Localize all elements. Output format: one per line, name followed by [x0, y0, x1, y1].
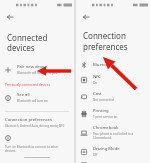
- staticText: 1 print service on: [93, 115, 118, 119]
- button[interactable]: Printing: [76, 105, 150, 122]
- button[interactable]: Pair new device: [0, 61, 74, 78]
- button[interactable]: Driving Mode: [76, 143, 150, 160]
- button[interactable]: See all: [0, 89, 74, 106]
- staticText: Turn on Bluetooth to connect to other de…: [5, 145, 69, 153]
- staticText: preferences: [83, 41, 128, 52]
- staticText: Bluetooth will turn on to pair: [17, 71, 58, 75]
- button[interactable]: Cast: [76, 88, 150, 105]
- button[interactable]: Nearby Share: [76, 160, 150, 163]
- staticText: Pair new device: [17, 64, 48, 70]
- staticText: Cast: [93, 91, 102, 97]
- staticText: Chromebook: [93, 125, 119, 131]
- staticText: Connection: [83, 30, 126, 41]
- staticText: Bluetooth, Android Auto, driving mode, N…: [5, 124, 65, 128]
- staticText: Connected devices: [7, 32, 71, 53]
- button[interactable]: NFC: [76, 71, 150, 88]
- button[interactable]: Bluetooth: [76, 59, 150, 71]
- staticText: Connection preferences: [5, 117, 52, 123]
- button[interactable]: Back: [4, 11, 15, 22]
- button[interactable]: Chromebook: [76, 122, 150, 143]
- staticText: NFC: [93, 74, 102, 80]
- staticText: Off: [93, 153, 98, 157]
- staticText: Previously connected devices: [5, 82, 51, 86]
- button[interactable]: Back: [80, 11, 91, 22]
- staticText: Bluetooth: [93, 62, 113, 68]
- staticText: Driving Mode: [93, 146, 120, 152]
- button[interactable]: Connection preferences: [0, 116, 74, 129]
- staticText: Bluetooth will turn on: [17, 99, 48, 103]
- staticText: Not connected: [93, 98, 114, 102]
- staticText: On: [93, 81, 98, 85]
- staticText: Printing: [93, 108, 109, 114]
- staticText: Your phone is not linked to a Chromebook: [93, 132, 145, 140]
- staticText: See all: [17, 92, 30, 98]
